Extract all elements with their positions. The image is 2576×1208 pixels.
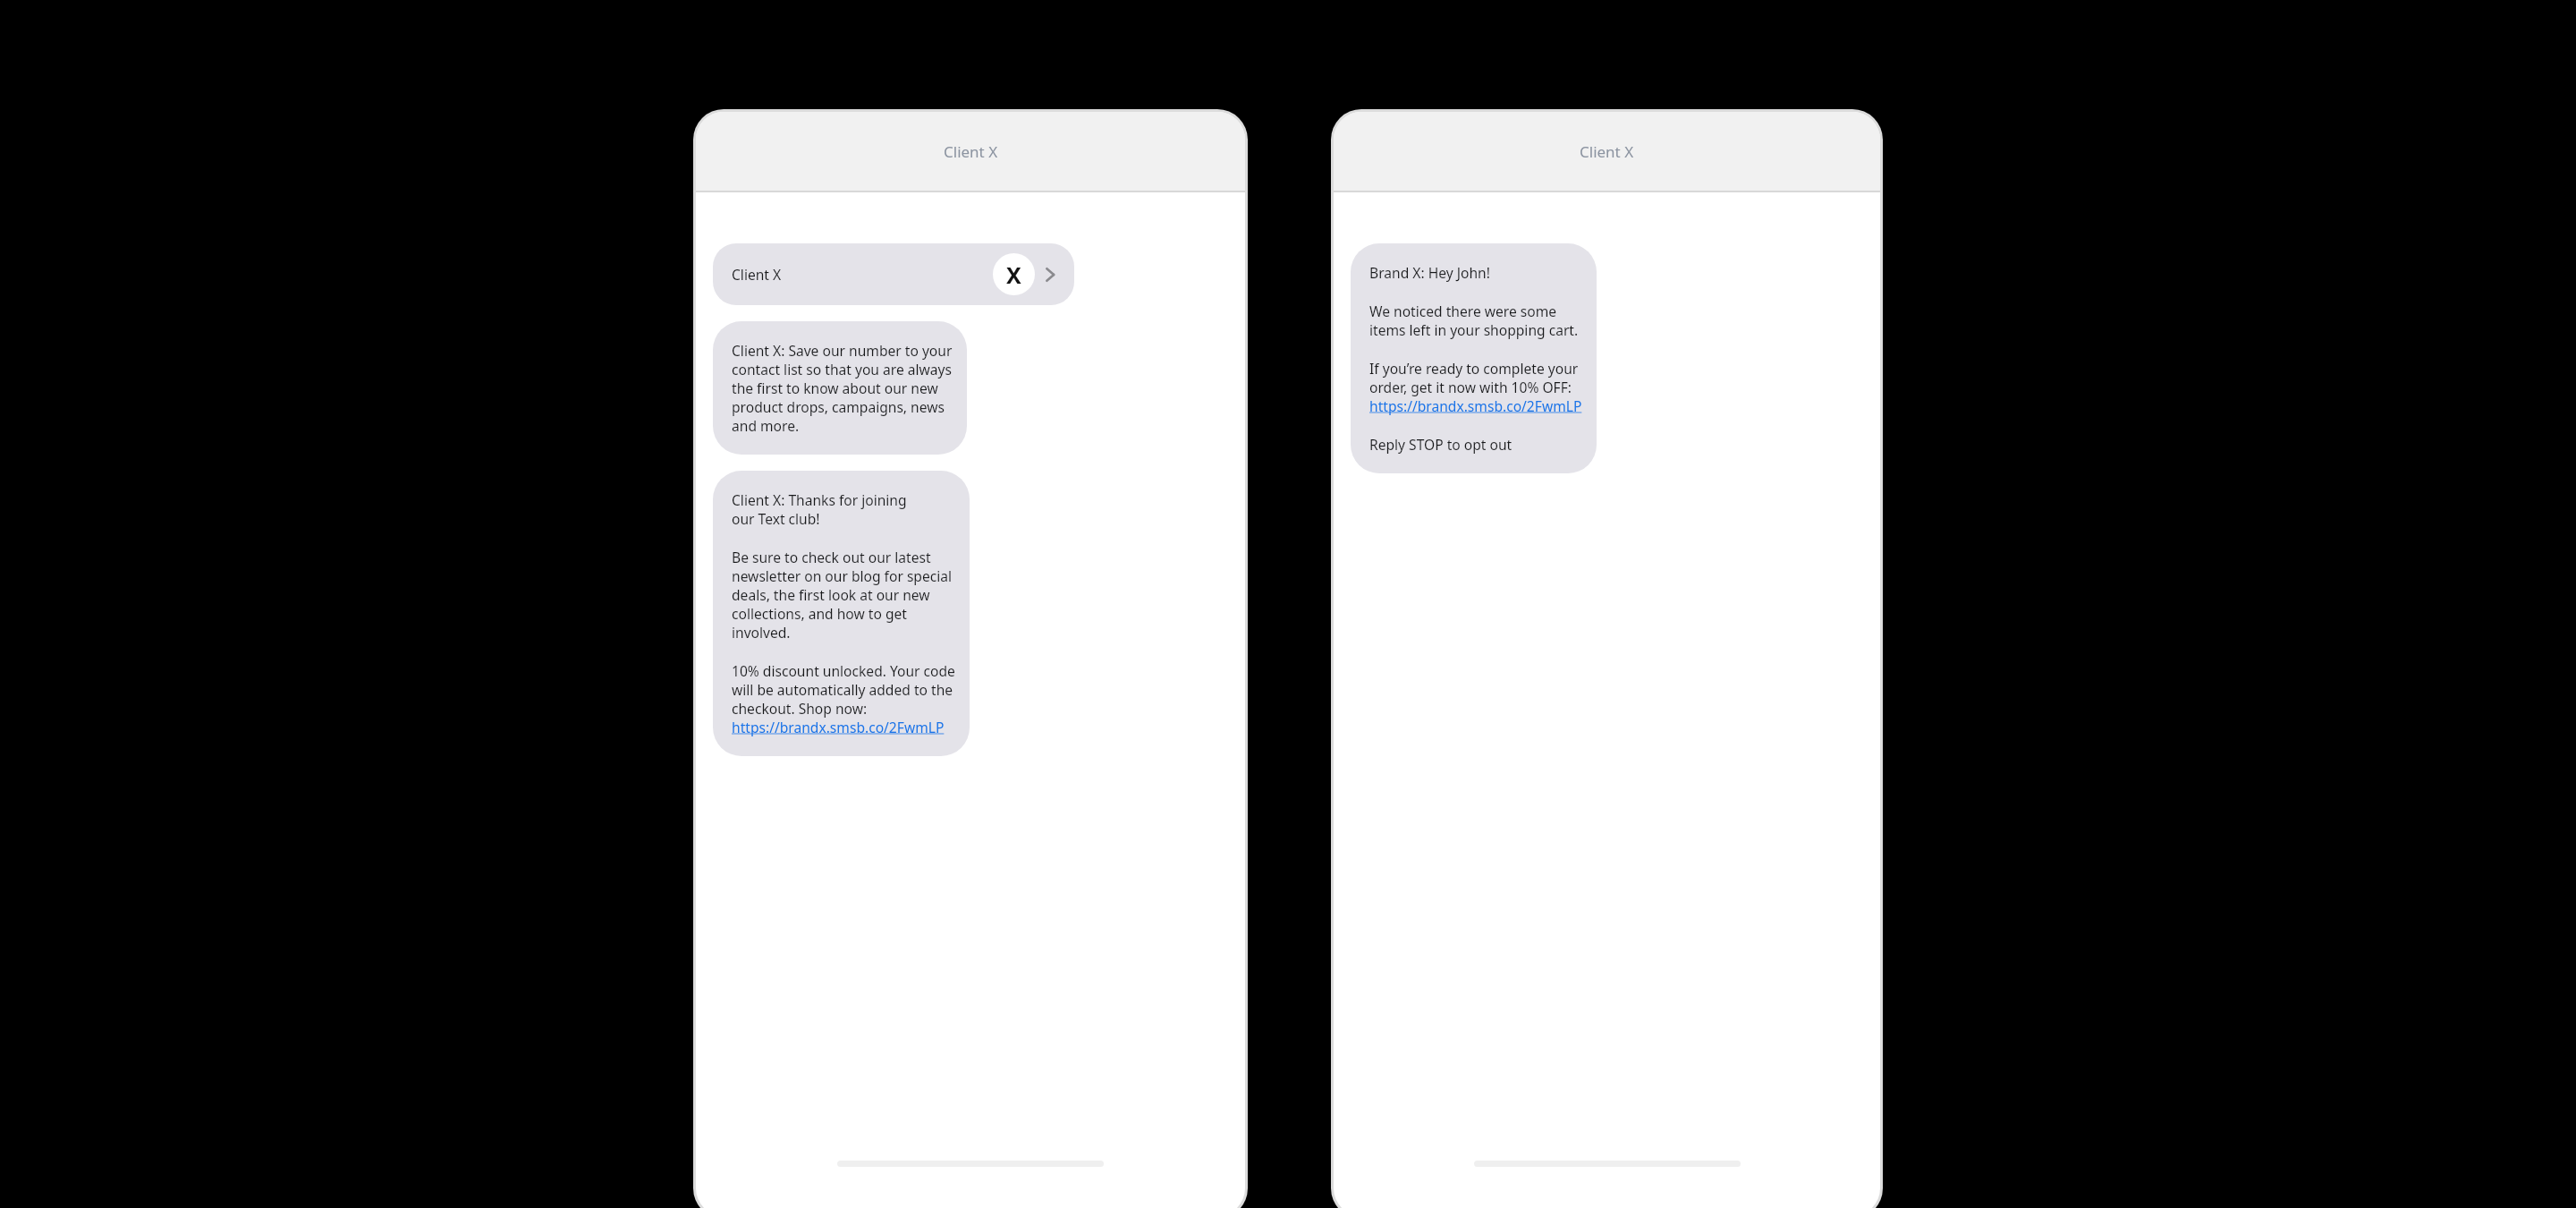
- staticText: https://brandx.smsb.co/2FwmLP: [732, 718, 945, 736]
- other: View contact: [1038, 263, 1062, 286]
- staticText: Client X: [1580, 141, 1634, 162]
- staticText: X: [1006, 259, 1021, 290]
- button[interactable]: https://brandx.smsb.co/2FwmLP: [732, 718, 945, 736]
- staticText: Reply STOP to opt out: [1369, 435, 1513, 454]
- other: Client X contact avatar: [993, 253, 1035, 295]
- staticText: We noticed there were some items left in…: [1369, 302, 1579, 339]
- staticText: Client X: Thanks for joining our Text cl…: [732, 490, 907, 528]
- staticText: If you’re ready to complete your order, …: [1369, 359, 1579, 396]
- button[interactable]: Brand X: Hey John!: [1351, 243, 1597, 473]
- staticText: Be sure to check out our latest newslett…: [732, 548, 953, 642]
- button[interactable]: Client X: Save our number to your contac…: [713, 321, 967, 455]
- staticText: Client X: [732, 265, 782, 284]
- staticText: Client X: [944, 141, 998, 162]
- button[interactable]: https://brandx.smsb.co/2FwmLP: [1369, 396, 1582, 415]
- button[interactable]: Client X: [713, 243, 1074, 305]
- staticText: https://brandx.smsb.co/2FwmLP: [1369, 396, 1582, 415]
- button[interactable]: Client X: Thanks for joining our Text cl…: [713, 471, 970, 756]
- staticText: Brand X: Hey John!: [1369, 263, 1490, 282]
- staticText: 10% discount unlocked. Your code will be…: [732, 661, 955, 718]
- staticText: Client X: Save our number to your contac…: [732, 341, 953, 435]
